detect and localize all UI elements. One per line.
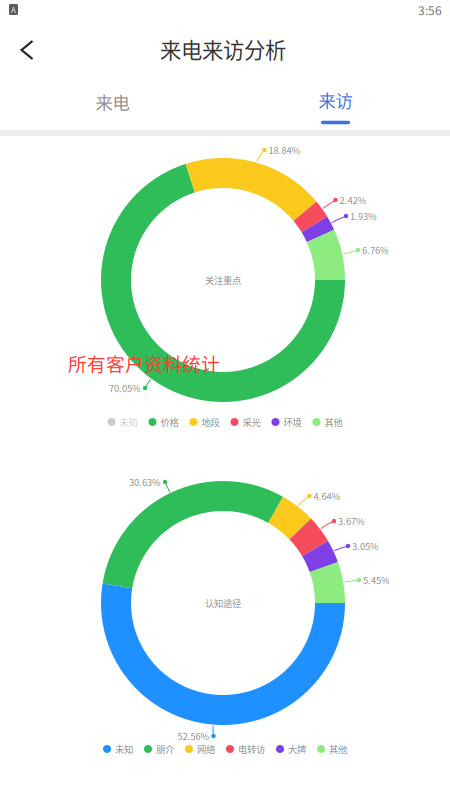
staticText: 价格 bbox=[160, 415, 178, 429]
staticText: 采光 bbox=[242, 415, 260, 429]
staticText: 18.84% bbox=[268, 143, 300, 157]
staticText: 环境 bbox=[283, 415, 301, 429]
staticText: 所有客户资料统计 bbox=[68, 349, 220, 376]
staticText: 其他 bbox=[329, 742, 347, 756]
staticText: 来访 bbox=[318, 87, 352, 113]
staticText: 30.63% bbox=[129, 475, 161, 489]
staticText: 3.67% bbox=[338, 514, 365, 528]
staticText: 4.64% bbox=[313, 489, 340, 503]
staticText: 未知 bbox=[119, 415, 137, 429]
staticText: 来电 bbox=[95, 89, 129, 115]
staticText: 70.05% bbox=[109, 381, 141, 395]
staticText: 地段 bbox=[201, 415, 219, 429]
staticText: 6.76% bbox=[362, 243, 389, 257]
staticText: 大牌 bbox=[288, 742, 306, 756]
staticText: 3:56 bbox=[418, 1, 442, 19]
staticText: 未知 bbox=[115, 742, 133, 756]
staticText: A bbox=[11, 4, 16, 15]
staticText: 5.45% bbox=[363, 573, 390, 587]
staticText: 电转访 bbox=[238, 742, 265, 756]
button[interactable]: 来访 bbox=[223, 79, 448, 125]
staticText: 2.42% bbox=[339, 193, 366, 207]
staticText: 其他 bbox=[324, 415, 342, 429]
button[interactable]: Back bbox=[5, 28, 49, 72]
staticText: 1.93% bbox=[350, 209, 377, 223]
staticText: 认知途径 bbox=[205, 596, 241, 610]
staticText: 52.56% bbox=[177, 729, 209, 743]
button[interactable]: 来电 bbox=[0, 79, 225, 125]
staticText: 来电来访分析 bbox=[160, 34, 286, 64]
staticText: 关注重点 bbox=[205, 273, 241, 287]
staticText: 朋介 bbox=[156, 742, 174, 756]
staticText: 网络 bbox=[197, 742, 215, 756]
staticText: 3.05% bbox=[352, 539, 379, 553]
